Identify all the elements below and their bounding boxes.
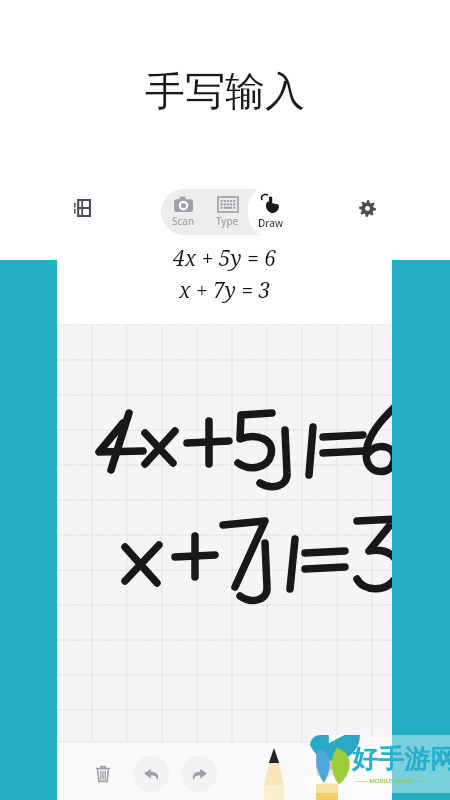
button[interactable]: Scan <box>161 189 205 235</box>
staticText: Draw <box>258 216 284 230</box>
staticText: 4x + 5y = 6 <box>173 244 277 273</box>
button[interactable]: Type <box>205 189 249 235</box>
staticText: —— MOBILE GAMES —— <box>356 777 428 785</box>
staticText: Type <box>216 214 239 228</box>
button[interactable]: Undo <box>133 756 169 792</box>
staticText: 好手游网 <box>352 743 450 776</box>
button[interactable]: Redo <box>181 756 217 792</box>
button[interactable]: Pen <box>253 748 295 800</box>
button[interactable]: Settings <box>350 191 384 225</box>
staticText: Scan <box>172 214 195 228</box>
staticText: x + 7y = 3 <box>179 276 271 305</box>
button[interactable]: Draw <box>248 185 294 237</box>
button[interactable]: Delete <box>85 756 121 792</box>
button[interactable]: Eraser <box>307 750 347 800</box>
staticText: 手写输入 <box>145 66 305 116</box>
button[interactable]: History list <box>65 191 99 225</box>
